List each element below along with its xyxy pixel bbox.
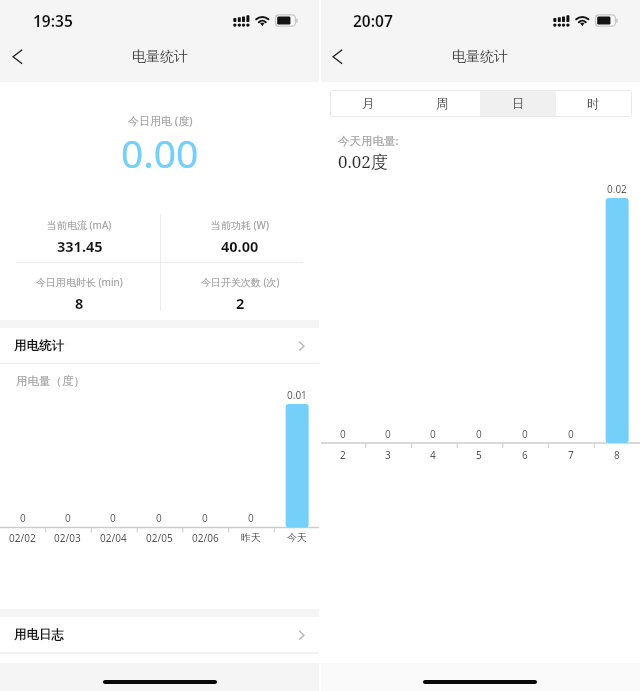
staticText: 周 xyxy=(436,96,449,112)
staticText: 0 xyxy=(156,511,162,525)
staticText: 昨天 xyxy=(241,531,261,544)
staticText: 6 xyxy=(522,448,528,462)
staticText: 0 xyxy=(110,511,116,525)
staticText: 40.00 xyxy=(221,236,259,256)
staticText: 当前电流 (mA) xyxy=(47,218,112,232)
staticText: 2 xyxy=(340,448,346,462)
staticText: 0 xyxy=(568,427,574,441)
staticText: 19:35 xyxy=(33,10,73,31)
staticText: 20:07 xyxy=(353,10,393,31)
staticText: 331.45 xyxy=(57,236,103,256)
staticText: 日 xyxy=(512,96,525,112)
staticText: 02/03 xyxy=(54,531,81,545)
button[interactable]: 日 xyxy=(480,91,556,116)
staticText: 02/02 xyxy=(9,531,36,545)
button[interactable]: 时 xyxy=(556,91,631,116)
staticText: 今日开关次数 (次) xyxy=(201,275,280,289)
button[interactable]: 用电日志 xyxy=(0,617,320,652)
staticText: 02/04 xyxy=(100,531,127,545)
staticText: 0 xyxy=(340,427,346,441)
staticText: 电量统计 xyxy=(132,48,188,66)
staticText: 0 xyxy=(522,427,528,441)
button[interactable]: 月 xyxy=(331,91,405,116)
staticText: 电量统计 xyxy=(452,48,508,66)
staticText: 当前功耗 (W) xyxy=(211,218,269,232)
staticText: 0.02 xyxy=(607,182,627,196)
staticText: 3 xyxy=(385,448,391,462)
staticText: 0.01 xyxy=(287,388,307,402)
staticText: 用电统计 xyxy=(14,338,64,354)
staticText: 0.00 xyxy=(121,126,199,179)
staticText: 0 xyxy=(20,511,26,525)
button[interactable]: 用电统计 xyxy=(0,328,320,363)
staticText: 2 xyxy=(236,293,245,313)
staticText: 今日用电 (度) xyxy=(128,113,193,128)
staticText: 0.02度 xyxy=(338,150,388,173)
staticText: 4 xyxy=(430,448,436,462)
staticText: 02/06 xyxy=(192,531,219,545)
staticText: 0 xyxy=(476,427,482,441)
staticText: 用电量（度） xyxy=(16,374,85,388)
staticText: 时 xyxy=(587,96,600,112)
staticText: 今天用电量: xyxy=(338,133,399,149)
staticText: 用电日志 xyxy=(14,627,64,643)
staticText: 0 xyxy=(430,427,436,441)
staticText: 今天 xyxy=(287,531,307,544)
staticText: 月 xyxy=(362,96,375,112)
staticText: 0 xyxy=(65,511,71,525)
button[interactable]: Back xyxy=(0,34,40,82)
staticText: 0 xyxy=(385,427,391,441)
staticText: 0 xyxy=(248,511,254,525)
button[interactable]: 周 xyxy=(405,91,480,116)
staticText: 7 xyxy=(568,448,574,462)
staticText: 5 xyxy=(476,448,482,462)
staticText: 8 xyxy=(614,448,620,462)
staticText: 02/05 xyxy=(146,531,173,545)
staticText: 今日用电时长 (min) xyxy=(36,275,123,289)
button[interactable]: Back xyxy=(320,34,360,82)
staticText: 8 xyxy=(75,293,84,313)
staticText: 0 xyxy=(202,511,208,525)
